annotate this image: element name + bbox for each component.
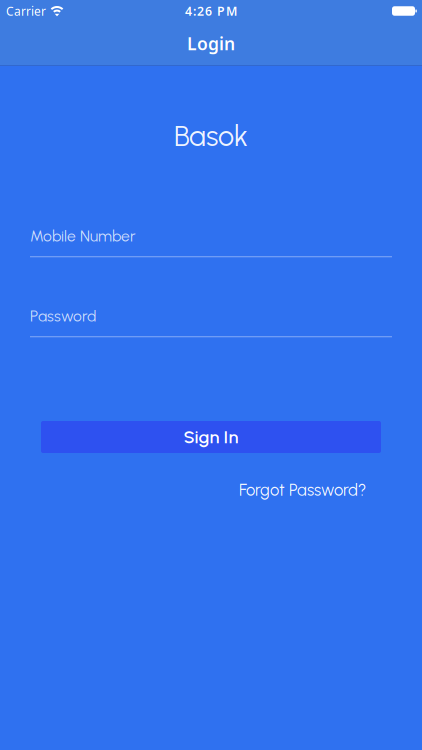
staticText: 4:26 PM — [185, 3, 237, 19]
button[interactable]: Forgot Password? — [239, 480, 366, 500]
staticText: Login — [187, 32, 235, 55]
staticText: Basok — [174, 119, 248, 153]
staticText: Forgot Password? — [239, 480, 366, 500]
button[interactable]: Mobile Number — [30, 226, 392, 257]
button[interactable]: Sign In — [41, 421, 381, 453]
staticText: Mobile Number — [30, 227, 136, 245]
staticText: Password — [30, 307, 96, 325]
staticText: Sign In — [183, 426, 238, 448]
staticText: Carrier — [6, 3, 46, 19]
button[interactable]: Password — [30, 306, 392, 337]
